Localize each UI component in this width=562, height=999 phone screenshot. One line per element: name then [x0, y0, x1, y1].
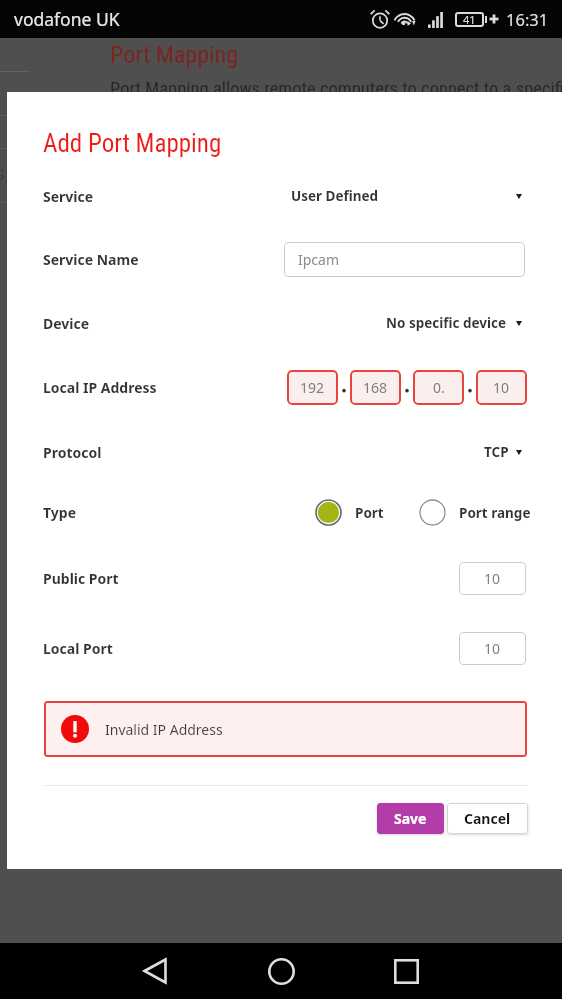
staticText: Port Mapping allows remote computers to … [110, 78, 562, 100]
staticText: 10 [484, 639, 501, 658]
button[interactable]: 10 [459, 632, 526, 665]
staticText: 0. [433, 378, 445, 397]
button[interactable]: 0. [413, 370, 464, 405]
button[interactable]: 10 [476, 370, 527, 405]
staticText: Ipcam [298, 250, 340, 269]
button[interactable]: Home [253, 943, 309, 999]
button[interactable]: 168 [350, 370, 401, 405]
staticText: Service [43, 187, 94, 206]
button[interactable]: 192 [287, 370, 338, 405]
button[interactable]: Back [127, 943, 183, 999]
staticText: User Defined [291, 187, 379, 205]
staticText: 16:31 [506, 8, 549, 30]
staticText: Service Name [43, 250, 139, 269]
staticText: Save [394, 809, 427, 828]
button[interactable]: Ipcam [284, 242, 525, 277]
staticText: vodafone UK [14, 7, 120, 31]
button[interactable]: Port [315, 499, 384, 526]
staticText: Local IP Address [43, 378, 157, 397]
staticText: TCP [484, 443, 509, 461]
staticText: 192 [300, 378, 325, 397]
staticText: G) [0, 166, 10, 184]
button[interactable]: 10 [459, 562, 526, 595]
button[interactable]: Cancel [447, 803, 528, 834]
staticText: 168 [363, 378, 388, 397]
button[interactable]: Save [377, 803, 444, 834]
staticText: Port range [459, 504, 531, 522]
staticText: Invalid IP Address [105, 720, 223, 739]
staticText: Cancel [464, 809, 511, 828]
staticText: 10 [484, 569, 501, 588]
staticText: 10 [493, 378, 510, 397]
staticText: Port [355, 504, 384, 522]
staticText: Type [43, 503, 76, 522]
button[interactable]: Recents [378, 943, 434, 999]
staticText: Device [43, 314, 90, 333]
staticText: Protocol [43, 443, 102, 462]
staticText: Public Port [43, 569, 119, 588]
staticText: Add Port Mapping [43, 129, 222, 158]
staticText: No specific device [386, 314, 507, 332]
staticText: Local Port [43, 639, 113, 658]
staticText: Port Mapping [110, 41, 238, 69]
button[interactable]: Port range [419, 499, 531, 526]
staticText: 41 [463, 12, 476, 27]
